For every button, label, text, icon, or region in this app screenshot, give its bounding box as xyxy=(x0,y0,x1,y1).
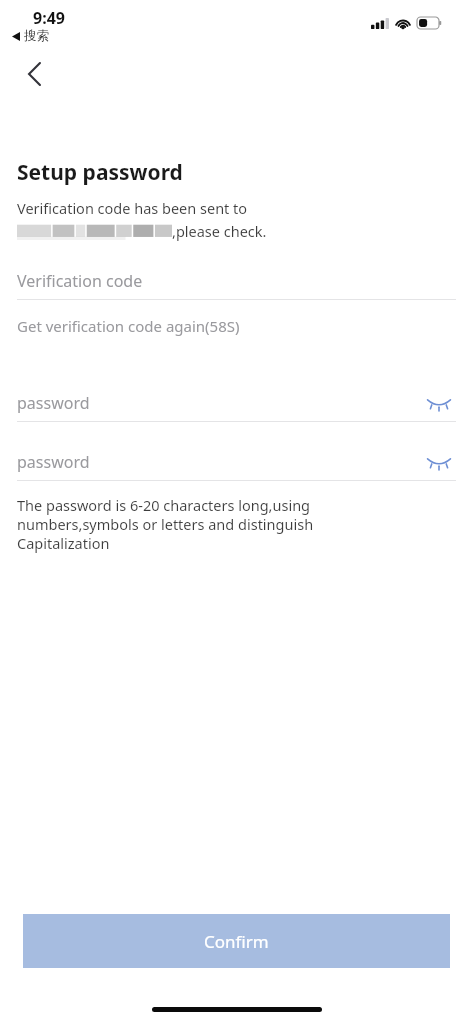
staticText: Setup password xyxy=(17,158,183,187)
button[interactable]: Confirm xyxy=(23,914,450,968)
staticText: 搜索 xyxy=(24,28,49,44)
staticText: password xyxy=(17,392,90,414)
staticText: Confirm xyxy=(204,930,269,953)
staticText: password xyxy=(17,451,90,473)
staticText: Verification code has been sent to xyxy=(17,198,248,218)
button[interactable]: password xyxy=(17,444,456,480)
staticText: Verification code xyxy=(17,270,143,292)
staticText: Get verification code again(58S) xyxy=(17,316,240,336)
button[interactable]: Verification code xyxy=(17,263,456,299)
button[interactable]: password xyxy=(17,385,456,421)
button[interactable]: Show password xyxy=(422,386,456,420)
button[interactable]: Get verification code again(58S) xyxy=(17,311,456,341)
button[interactable]: Back xyxy=(12,52,56,96)
staticText: The password is 6-20 characters long,usi… xyxy=(17,495,314,553)
staticText: ,please check. xyxy=(172,221,267,241)
button[interactable]: Show password xyxy=(422,445,456,479)
staticText: 9:49 xyxy=(33,7,65,29)
button[interactable]: 搜索 xyxy=(12,28,49,44)
